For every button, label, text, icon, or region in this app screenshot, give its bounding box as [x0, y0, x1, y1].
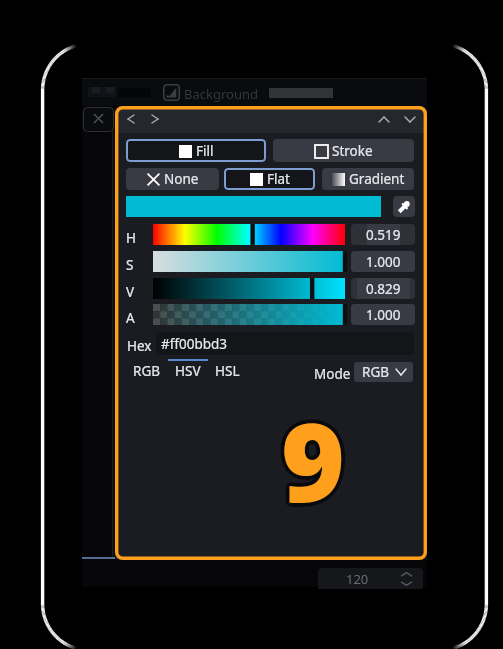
staticText: 9 — [281, 388, 345, 536]
staticText: H — [126, 229, 137, 247]
staticText: 1.000 — [366, 306, 401, 324]
staticText: 9 — [281, 383, 345, 531]
staticText: RGB — [133, 362, 160, 380]
staticText: 9 — [280, 382, 344, 530]
staticText: 9 — [281, 385, 345, 533]
staticText: 120 — [346, 570, 369, 588]
staticText: 9 — [280, 385, 344, 533]
button[interactable]: 0.519 — [351, 224, 415, 245]
button[interactable]: Close — [83, 107, 114, 130]
staticText: 9 — [279, 385, 343, 533]
staticText: 9 — [279, 388, 343, 536]
staticText: Gradient — [349, 170, 405, 188]
staticText: 9 — [281, 385, 345, 533]
staticText: 9 — [283, 383, 347, 531]
staticText: 1.000 — [366, 253, 401, 271]
button[interactable]: 1.000 — [351, 251, 415, 272]
staticText: Stroke — [332, 142, 373, 160]
staticText: 9 — [282, 383, 346, 531]
staticText: 9 — [284, 386, 348, 534]
button[interactable]: Stroke — [273, 139, 414, 162]
staticText: 9 — [282, 388, 346, 536]
staticText: 9 — [277, 385, 341, 533]
staticText: Hex — [127, 337, 152, 355]
button[interactable] — [153, 278, 345, 299]
staticText: 9 — [281, 382, 345, 530]
staticText: 9 — [279, 386, 343, 534]
staticText: 9 — [278, 386, 342, 534]
staticText: HSV — [175, 362, 201, 380]
staticText: 9 — [280, 384, 344, 532]
staticText: 9 — [281, 381, 345, 529]
button[interactable]: Pick colour — [393, 196, 415, 217]
staticText: 9 — [278, 387, 342, 535]
staticText: Background — [184, 85, 258, 103]
staticText: 9 — [280, 388, 344, 536]
button[interactable]: Fill — [126, 139, 266, 162]
staticText: Fill — [196, 142, 214, 160]
staticText: 9 — [283, 384, 347, 532]
staticText: 9 — [281, 386, 345, 534]
staticText: 9 — [284, 383, 348, 531]
staticText: V — [126, 283, 135, 301]
button[interactable]: Next — [146, 110, 164, 128]
button[interactable]: None — [126, 168, 219, 190]
staticText: #ff00bbd3 — [161, 335, 228, 353]
staticText: 9 — [281, 387, 345, 535]
button[interactable]: 1.000 — [351, 304, 415, 325]
staticText: 9 — [278, 383, 342, 531]
staticText: 9 — [279, 382, 343, 530]
button[interactable]: Flat — [224, 168, 315, 190]
staticText: 0.829 — [366, 280, 401, 298]
staticText: 0.519 — [366, 226, 401, 244]
staticText: 9 — [278, 384, 342, 532]
button[interactable] — [153, 224, 345, 245]
staticText: 9 — [280, 386, 344, 534]
staticText: 9 — [282, 387, 346, 535]
staticText: 9 — [285, 385, 349, 533]
button[interactable]: Collapse — [375, 110, 393, 128]
staticText: 9 — [278, 385, 342, 533]
staticText: 9 — [279, 384, 343, 532]
button[interactable]: 120 — [318, 568, 423, 589]
button[interactable]: HSV — [169, 360, 206, 382]
staticText: 9 — [283, 382, 347, 530]
staticText: 9 — [280, 383, 344, 531]
staticText: 9 — [284, 387, 348, 535]
staticText: 9 — [279, 387, 343, 535]
button[interactable]: #ff00bbd3 — [156, 332, 414, 355]
staticText: 9 — [283, 387, 347, 535]
staticText: 9 — [283, 386, 347, 534]
staticText: None — [164, 170, 199, 188]
button[interactable]: 0.829 — [351, 278, 415, 299]
staticText: 9 — [282, 385, 346, 533]
button[interactable] — [153, 304, 345, 325]
staticText: 9 — [281, 384, 345, 532]
staticText: 9 — [284, 385, 348, 533]
staticText: 9 — [282, 384, 346, 532]
button[interactable] — [153, 251, 345, 272]
button[interactable]: RGB — [128, 360, 165, 382]
button[interactable]: HSL — [209, 360, 246, 382]
staticText: RGB — [362, 363, 389, 381]
staticText: A — [126, 309, 135, 327]
staticText: 9 — [282, 382, 346, 530]
staticText: 9 — [283, 388, 347, 536]
staticText: 9 — [280, 387, 344, 535]
staticText: S — [126, 256, 134, 274]
staticText: Flat — [267, 170, 290, 188]
staticText: 9 — [281, 389, 345, 537]
staticText: Mode — [314, 365, 351, 383]
staticText: 9 — [283, 385, 347, 533]
button[interactable]: Expand — [401, 110, 419, 128]
button[interactable]: RGB — [354, 362, 413, 382]
staticText: HSL — [215, 362, 240, 380]
staticText: 9 — [284, 384, 348, 532]
staticText: 9 — [282, 386, 346, 534]
button[interactable]: Previous — [122, 110, 140, 128]
staticText: 9 — [279, 383, 343, 531]
button[interactable]: Gradient — [322, 168, 414, 190]
